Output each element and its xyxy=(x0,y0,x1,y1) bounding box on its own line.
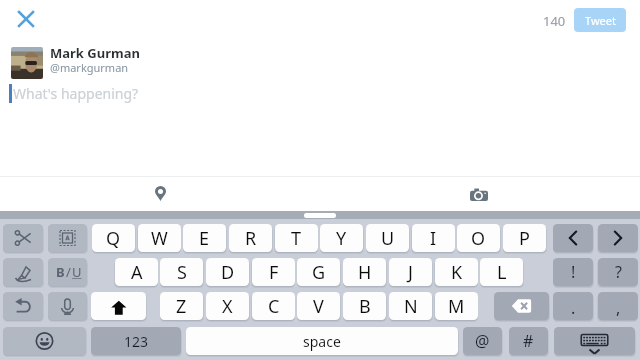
staticText: U xyxy=(381,226,395,251)
button[interactable]: # xyxy=(509,327,548,355)
button[interactable]: Z xyxy=(160,292,203,320)
staticText: M xyxy=(448,294,465,319)
button[interactable]: D xyxy=(206,258,249,286)
staticText: P xyxy=(519,226,530,251)
staticText: space xyxy=(303,332,341,351)
button[interactable]: F xyxy=(252,258,295,286)
staticText: Y xyxy=(336,226,347,251)
button[interactable]: Move right xyxy=(598,224,638,252)
staticText: G xyxy=(312,260,326,285)
button[interactable]: Emoji xyxy=(3,327,86,355)
staticText: U xyxy=(72,263,82,281)
button[interactable]: C xyxy=(252,292,295,320)
button[interactable]: Copy xyxy=(48,224,87,252)
staticText: O xyxy=(471,226,486,251)
button[interactable]: , xyxy=(598,292,638,320)
staticText: ? xyxy=(615,261,622,283)
staticText: Q xyxy=(106,226,121,251)
button[interactable]: space xyxy=(186,327,458,355)
button[interactable]: Highlight xyxy=(3,258,43,286)
staticText: . xyxy=(571,297,576,319)
staticText: Mark Gurman xyxy=(50,44,140,62)
button[interactable]: J xyxy=(389,258,432,286)
button[interactable]: ? xyxy=(598,258,638,286)
staticText: ! xyxy=(571,261,576,283)
button[interactable]: Add location xyxy=(146,179,174,207)
button[interactable]: Cut xyxy=(3,224,43,252)
button[interactable]: S xyxy=(160,258,203,286)
staticText: I xyxy=(430,226,437,251)
staticText: B xyxy=(359,294,371,319)
staticText: 140 xyxy=(543,12,566,28)
staticText: @ xyxy=(475,330,490,352)
staticText: X xyxy=(222,294,233,319)
staticText: , xyxy=(616,297,621,319)
button[interactable]: O xyxy=(457,224,500,252)
button[interactable]: Shift xyxy=(91,292,146,320)
staticText: Tweet xyxy=(585,13,616,28)
button[interactable]: G xyxy=(297,258,340,286)
button[interactable]: Y xyxy=(320,224,363,252)
button[interactable]: Move left xyxy=(553,224,593,252)
button[interactable]: Formatting xyxy=(48,258,87,286)
button[interactable]: Q xyxy=(92,224,135,252)
staticText: H xyxy=(358,260,372,285)
button[interactable]: Add photo xyxy=(465,180,493,208)
button[interactable]: Close xyxy=(11,4,41,34)
staticText: / xyxy=(66,263,71,281)
button[interactable]: @ xyxy=(463,327,502,355)
staticText: E xyxy=(199,226,210,251)
staticText: B xyxy=(56,263,65,281)
staticText: N xyxy=(404,294,418,319)
staticText: F xyxy=(269,260,279,285)
button[interactable]: E xyxy=(183,224,226,252)
staticText: What's happening? xyxy=(13,84,139,103)
button[interactable]: W xyxy=(138,224,181,252)
staticText: C xyxy=(268,294,280,319)
button[interactable]: X xyxy=(206,292,249,320)
staticText: S xyxy=(177,260,187,285)
button[interactable]: H xyxy=(343,258,386,286)
button[interactable]: U xyxy=(366,224,409,252)
button[interactable]: 123 xyxy=(91,327,181,355)
button[interactable]: L xyxy=(480,258,523,286)
staticText: K xyxy=(451,260,463,285)
staticText: Z xyxy=(176,294,187,319)
staticText: V xyxy=(313,294,324,319)
staticText: D xyxy=(221,260,235,285)
button[interactable]: R xyxy=(229,224,272,252)
staticText: # xyxy=(523,330,534,352)
button[interactable]: I xyxy=(412,224,455,252)
staticText: T xyxy=(291,226,302,251)
button[interactable]: V xyxy=(297,292,340,320)
button[interactable]: Hide keyboard xyxy=(554,327,635,355)
button[interactable]: Undo xyxy=(3,292,43,320)
button[interactable]: Backspace xyxy=(494,292,549,320)
staticText: W xyxy=(151,226,168,251)
staticText: A xyxy=(131,260,143,285)
button[interactable]: M xyxy=(435,292,478,320)
button[interactable]: . xyxy=(553,292,593,320)
button[interactable]: Tweet xyxy=(574,8,626,32)
button[interactable]: Dictate xyxy=(48,292,87,320)
staticText: J xyxy=(408,260,413,285)
staticText: 123 xyxy=(124,332,149,351)
button[interactable]: T xyxy=(275,224,318,252)
button[interactable]: P xyxy=(503,224,546,252)
staticText: R xyxy=(245,226,257,251)
button[interactable]: K xyxy=(435,258,478,286)
button[interactable]: B xyxy=(343,292,386,320)
button[interactable]: ! xyxy=(553,258,593,286)
staticText: L xyxy=(497,260,507,285)
button[interactable]: N xyxy=(389,292,432,320)
staticText: @markgurman xyxy=(50,60,129,75)
button[interactable]: A xyxy=(115,258,158,286)
button[interactable]: Profile photo xyxy=(11,47,43,79)
